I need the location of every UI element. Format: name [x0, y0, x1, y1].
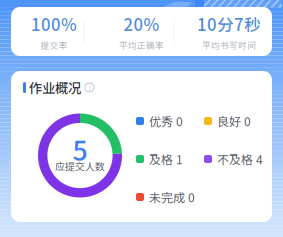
staticText: 100%: [31, 12, 77, 36]
staticText: 及格 1: [149, 150, 183, 168]
staticText: 提交率: [40, 39, 67, 51]
staticText: 5: [72, 130, 87, 168]
staticText: 20%: [123, 12, 159, 36]
staticText: 不及格 4: [217, 150, 263, 168]
staticText: 未完成 0: [149, 188, 195, 206]
staticText: 作业概况: [29, 78, 81, 97]
staticText: 10分7秒: [197, 12, 261, 36]
staticText: 优秀 0: [149, 112, 183, 130]
staticText: 应提交人数: [55, 159, 105, 173]
staticText: i: [88, 82, 90, 93]
staticText: 良好 0: [217, 112, 251, 130]
staticText: 平均书写时间: [202, 39, 256, 51]
staticText: 平均正确率: [119, 39, 164, 51]
